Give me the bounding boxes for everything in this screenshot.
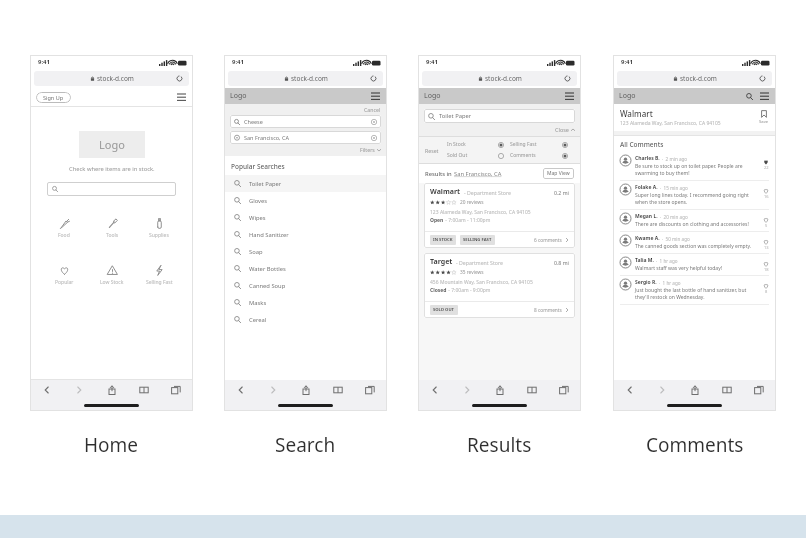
button[interactable]: Cheese <box>230 115 381 128</box>
button[interactable]: Wipes <box>224 209 387 226</box>
button[interactable]: Megan L. <box>613 210 776 231</box>
button[interactable]: Share <box>103 381 121 399</box>
button[interactable]: Toilet Paper <box>424 109 575 123</box>
staticText: Super long lines today. I recommend goin… <box>635 192 760 206</box>
button[interactable]: Bookmarks <box>135 381 153 399</box>
button[interactable]: Food <box>44 218 84 239</box>
staticText: IN STOCK <box>433 237 453 243</box>
button[interactable]: Menu <box>175 91 187 103</box>
button[interactable]: Share <box>686 381 704 399</box>
button[interactable]: Tabs <box>167 381 185 399</box>
button[interactable]: Search <box>744 91 755 102</box>
button[interactable]: In Stock <box>447 141 510 148</box>
button[interactable]: Bookmarks <box>523 381 541 399</box>
staticText: Walmart staff was very helpful today! <box>635 265 723 272</box>
button[interactable]: Share <box>491 381 509 399</box>
button[interactable]: Like <box>763 235 769 250</box>
staticText: stock-d.com <box>485 74 522 83</box>
button[interactable]: Bookmarks <box>718 381 736 399</box>
button[interactable]: Menu <box>564 91 575 102</box>
staticText: Be sure to stock up on toilet paper. Peo… <box>635 163 760 177</box>
button[interactable]: Like <box>763 213 769 228</box>
button[interactable]: Sold Out <box>447 152 510 159</box>
staticText: 123 Alameda Way, San Francisco, CA 94105 <box>620 120 721 127</box>
button[interactable]: Popular <box>44 265 84 286</box>
staticText: Save <box>759 119 769 125</box>
button[interactable]: Talia M. <box>613 254 776 275</box>
button[interactable]: Forward <box>264 381 282 399</box>
button[interactable]: Menu <box>759 91 770 102</box>
button[interactable]: Tools <box>92 218 132 239</box>
button[interactable]: stock-d.com <box>422 71 577 86</box>
staticText: Water Bottles <box>249 265 286 273</box>
button[interactable]: Forward <box>70 381 88 399</box>
staticText: Selling Fast <box>510 141 537 148</box>
staticText: Logo <box>424 91 441 101</box>
button[interactable]: Sign Up <box>43 94 64 101</box>
button[interactable]: Sergio R. <box>613 276 776 304</box>
button[interactable]: Back <box>426 381 444 399</box>
button[interactable]: SELLING FAST <box>460 235 495 245</box>
button[interactable]: Tabs <box>750 381 768 399</box>
button[interactable]: Forward <box>458 381 476 399</box>
button[interactable]: Canned Soup <box>224 277 387 294</box>
button[interactable]: Menu <box>370 91 381 102</box>
staticText: Home <box>84 432 139 458</box>
staticText: Charles B. <box>635 155 660 162</box>
staticText: 6 comments <box>534 237 562 244</box>
button[interactable]: Walmart <box>424 183 575 248</box>
staticText: Canned Soup <box>249 282 286 290</box>
button[interactable]: Bookmarks <box>329 381 347 399</box>
button[interactable]: Like <box>763 155 769 170</box>
button[interactable]: Supplies <box>139 218 179 239</box>
button[interactable]: stock-d.com <box>34 71 189 86</box>
button[interactable]: Charles B. <box>613 152 776 180</box>
button[interactable]: Forward <box>653 381 671 399</box>
button[interactable]: Masks <box>224 294 387 311</box>
button[interactable]: Map View <box>543 168 574 179</box>
button[interactable]: Water Bottles <box>224 260 387 277</box>
button[interactable]: Selling Fast <box>510 141 574 148</box>
button[interactable]: Low Stock <box>92 265 132 286</box>
button[interactable]: Folake A. <box>613 181 776 209</box>
staticText: 9:41 <box>232 58 244 66</box>
button[interactable]: Back <box>38 381 56 399</box>
button[interactable]: Clear <box>371 119 377 125</box>
staticText: The canned goods section was completely … <box>635 243 752 250</box>
button[interactable]: Back <box>621 381 639 399</box>
button[interactable]: Soap <box>224 243 387 260</box>
button[interactable]: Reset <box>425 147 439 154</box>
button[interactable]: Cancel <box>364 106 381 113</box>
button[interactable]: Save <box>759 110 769 125</box>
button[interactable]: Toilet Paper <box>224 175 387 192</box>
button[interactable]: Like <box>763 257 769 272</box>
button[interactable]: Share <box>297 381 315 399</box>
button[interactable]: stock-d.com <box>228 71 383 86</box>
staticText: Sold Out <box>447 152 468 159</box>
button[interactable]: Hand Sanitizer <box>224 226 387 243</box>
button[interactable]: Back <box>232 381 250 399</box>
button[interactable]: Tabs <box>555 381 573 399</box>
button[interactable]: Cereal <box>224 311 387 328</box>
button[interactable]: Gloves <box>224 192 387 209</box>
button[interactable]: Target <box>424 253 575 318</box>
button[interactable]: San Francisco, CA <box>230 131 381 144</box>
staticText: Megan L. <box>635 213 658 220</box>
button[interactable]: Like <box>763 279 769 294</box>
button[interactable]: Close <box>555 126 575 133</box>
button[interactable]: Selling Fast <box>139 265 179 286</box>
button[interactable]: IN STOCK <box>430 235 456 245</box>
button[interactable] <box>47 182 176 196</box>
button[interactable]: Tabs <box>361 381 379 399</box>
button[interactable]: SOLD OUT <box>430 305 458 315</box>
button[interactable]: Clear <box>371 135 377 141</box>
button[interactable]: Kwame A. <box>613 232 776 253</box>
button[interactable]: Comments <box>510 152 574 159</box>
button[interactable]: stock-d.com <box>617 71 772 86</box>
staticText: Soap <box>249 248 263 256</box>
staticText: San Francisco, CA <box>454 170 502 178</box>
button[interactable]: Like <box>763 184 769 199</box>
staticText: Folake A. <box>635 184 658 191</box>
staticText: Target <box>430 257 453 267</box>
button[interactable]: Filters <box>360 146 381 153</box>
